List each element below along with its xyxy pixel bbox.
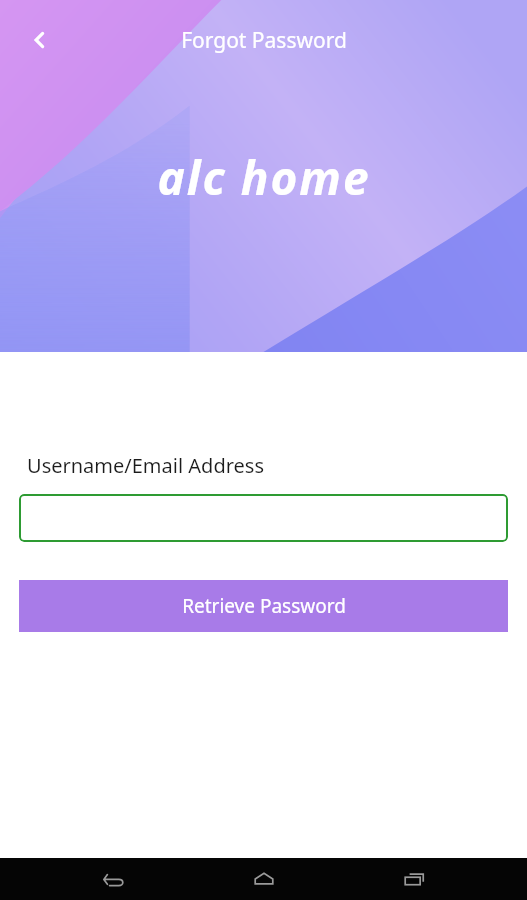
button[interactable]: Recent apps: [377, 858, 451, 900]
button[interactable]: Back: [14, 14, 66, 66]
button[interactable]: Retrieve Password: [19, 580, 508, 632]
staticText: alc home: [157, 146, 371, 209]
button[interactable]: Username or email address input: [19, 494, 508, 542]
staticText: Retrieve Password: [182, 593, 346, 619]
button[interactable]: Back: [77, 858, 151, 900]
staticText: Username/Email Address: [27, 452, 264, 479]
staticText: Forgot Password: [181, 26, 347, 55]
button[interactable]: Home: [227, 858, 301, 900]
